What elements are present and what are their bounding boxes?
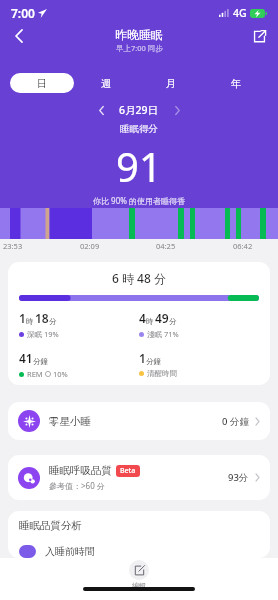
staticText: 睡眠品質分析 bbox=[19, 519, 82, 532]
staticText: 日 bbox=[37, 77, 47, 90]
button[interactable]: 編輯 bbox=[129, 558, 149, 590]
staticText: 零星小睡 bbox=[49, 415, 91, 428]
staticText: 昨晚睡眠 bbox=[115, 27, 163, 42]
button[interactable]: 年 bbox=[203, 73, 268, 93]
button[interactable]: 月 bbox=[138, 73, 203, 93]
staticText: 入睡前時間 bbox=[45, 545, 95, 558]
staticText: 分鐘 bbox=[146, 357, 161, 366]
staticText: 週 bbox=[101, 77, 111, 90]
staticText: 10% bbox=[53, 369, 68, 379]
staticText: Beta bbox=[120, 466, 136, 476]
staticText: 早上7:00 同步 bbox=[116, 43, 163, 53]
staticText: REM bbox=[27, 369, 43, 379]
staticText: 6 時 48 分 bbox=[112, 270, 166, 286]
staticText: 分 bbox=[49, 317, 57, 326]
staticText: 參考值：>60 分 bbox=[49, 480, 105, 491]
staticText: 18 bbox=[35, 310, 49, 326]
staticText: 清醒時間 bbox=[147, 369, 177, 378]
staticText: 4 bbox=[139, 310, 146, 326]
staticText: 時 bbox=[26, 317, 34, 326]
staticText: 時 bbox=[146, 317, 154, 326]
staticText: 編輯 bbox=[132, 581, 146, 590]
staticText: 你比 90% 的使用者睡得香 bbox=[93, 195, 185, 206]
staticText: 6月29日 bbox=[119, 103, 159, 117]
staticText: 23:53 bbox=[3, 241, 23, 251]
button[interactable]: Next day bbox=[167, 100, 187, 120]
staticText: 分鐘 bbox=[33, 357, 48, 366]
staticText: 49 bbox=[155, 310, 169, 326]
button[interactable]: 週 bbox=[74, 73, 138, 93]
staticText: 年 bbox=[231, 77, 241, 90]
staticText: 睡眠呼吸品質 bbox=[49, 464, 112, 477]
staticText: 深眠 19% bbox=[27, 329, 59, 339]
button[interactable]: Previous day bbox=[91, 100, 111, 120]
staticText: 0 分鐘 bbox=[222, 415, 249, 428]
button[interactable]: 日 bbox=[10, 73, 74, 93]
staticText: 7:00 bbox=[11, 5, 35, 21]
staticText: 分 bbox=[169, 317, 177, 326]
staticText: 93分 bbox=[228, 471, 249, 484]
staticText: 04:25 bbox=[156, 241, 176, 251]
staticText: 91 bbox=[116, 139, 162, 193]
staticText: 4G bbox=[233, 6, 247, 20]
button[interactable]: 睡眠呼吸品質 bbox=[8, 455, 270, 500]
button[interactable]: Share bbox=[243, 20, 275, 52]
staticText: 睡眠得分 bbox=[120, 123, 158, 135]
staticText: 06:42 bbox=[233, 241, 253, 251]
staticText: 月 bbox=[166, 77, 176, 90]
staticText: 02:09 bbox=[80, 241, 100, 251]
button[interactable]: 零星小睡 bbox=[8, 402, 270, 440]
staticText: 1 bbox=[19, 310, 26, 326]
staticText: 1 bbox=[139, 350, 146, 366]
staticText: 淺眠 71% bbox=[147, 329, 179, 339]
button[interactable]: Back bbox=[3, 20, 35, 52]
staticText: 41 bbox=[19, 350, 33, 366]
